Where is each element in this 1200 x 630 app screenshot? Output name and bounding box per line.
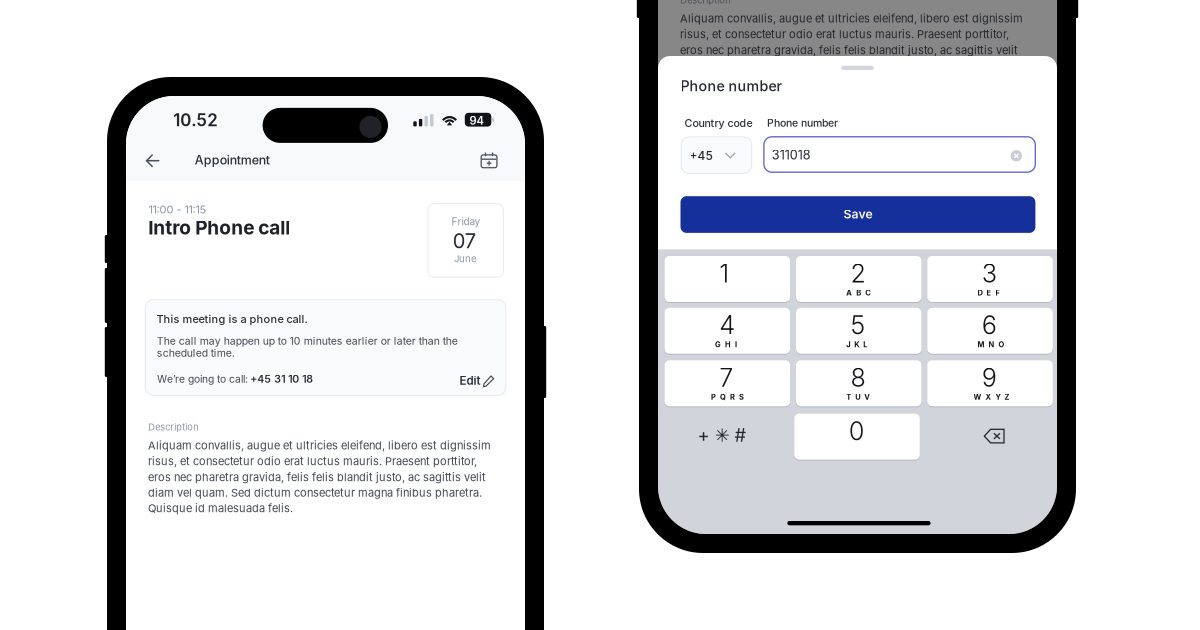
staticText: eros nec pharetra gravida, felis felis b… — [148, 470, 486, 484]
staticText: This meeting is a phone call. — [156, 312, 307, 326]
staticText: Description — [148, 421, 198, 433]
staticText: risus, et consectetur odio erat luctus m… — [680, 28, 1009, 41]
staticText: Description — [680, 0, 730, 6]
staticText: 2 — [851, 258, 866, 288]
staticText: 9 — [982, 363, 997, 393]
staticText: 1 — [719, 258, 728, 288]
staticText: D E F — [978, 288, 1000, 297]
button[interactable]: 7 — [665, 360, 790, 407]
button[interactable]: Clear text — [1005, 145, 1027, 167]
staticText: 94 — [469, 114, 483, 127]
staticText: T U V — [846, 393, 870, 402]
staticText: W X Y Z — [974, 393, 1010, 402]
staticText: 311018 — [772, 147, 811, 163]
staticText: Phone number — [680, 77, 781, 95]
button[interactable]: 6 — [927, 308, 1053, 355]
button[interactable]: Back — [135, 145, 171, 177]
button[interactable]: 0 — [794, 414, 920, 461]
staticText: Intro Phone call — [148, 216, 290, 239]
staticText: J K L — [846, 340, 867, 349]
staticText: Phone number — [767, 117, 838, 129]
staticText: 6 — [982, 310, 997, 340]
button[interactable]: 8 — [796, 360, 921, 407]
staticText: diam vel quam. Sed dictum consectetur ma… — [680, 59, 1014, 72]
staticText: 11:00 - 11:15 — [148, 203, 206, 216]
staticText: June — [454, 253, 477, 264]
staticText: eros nec pharetra gravida, felis felis b… — [680, 43, 1018, 57]
staticText: 7 — [719, 363, 733, 393]
button[interactable]: Edit — [460, 372, 494, 390]
staticText: scheduled time. — [157, 347, 235, 359]
staticText: + ✳ # — [697, 424, 746, 446]
button[interactable]: Add to calendar — [471, 144, 507, 176]
staticText: 10.52 — [173, 110, 217, 130]
staticText: diam vel quam. Sed dictum consectetur ma… — [148, 486, 482, 499]
staticText: We’re going to call: — [157, 373, 248, 385]
staticText: 0 — [849, 416, 864, 446]
button[interactable]: 5 — [796, 308, 921, 355]
button[interactable]: Symbols — [665, 414, 790, 460]
staticText: A B C — [846, 288, 871, 297]
staticText: Edit — [460, 374, 481, 388]
staticText: Quisque id malesuada felis. — [680, 75, 825, 88]
button[interactable]: 4 — [665, 308, 790, 355]
staticText: risus, et consectetur odio erat luctus m… — [148, 455, 477, 468]
staticText: 5 — [851, 310, 865, 340]
staticText: M N O — [978, 340, 1005, 349]
staticText: Save — [844, 207, 873, 222]
staticText: 4 — [719, 310, 734, 340]
button[interactable]: 1 — [665, 256, 790, 303]
staticText: 3 — [982, 258, 997, 288]
staticText: G H I — [715, 340, 737, 349]
staticText: Quisque id malesuada felis. — [148, 502, 293, 515]
button[interactable]: 2 — [796, 256, 921, 303]
staticText: Appointment — [195, 153, 270, 168]
staticText: +45 31 10 18 — [250, 373, 313, 385]
staticText: Friday — [452, 216, 481, 228]
staticText: 07 — [453, 229, 476, 253]
staticText: 8 — [851, 363, 866, 393]
button[interactable]: Delete — [927, 414, 1053, 460]
staticText: Aliquam convallis, augue et ultricies el… — [680, 12, 1023, 25]
staticText: P Q R S — [711, 393, 744, 402]
button[interactable]: 9 — [927, 360, 1053, 407]
staticText: The call may happen up to 10 minutes ear… — [157, 335, 458, 347]
button[interactable]: 3 — [927, 256, 1053, 303]
staticText: Country code — [685, 117, 753, 129]
staticText: Aliquam convallis, augue et ultricies el… — [148, 439, 491, 452]
button[interactable]: Save — [680, 196, 1035, 233]
button[interactable]: Country code — [681, 137, 752, 173]
staticText: +45 — [690, 148, 713, 163]
